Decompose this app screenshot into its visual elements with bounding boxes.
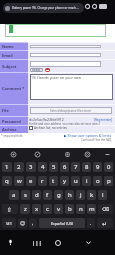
button[interactable]: ↵ — [97, 218, 113, 228]
button[interactable]: b — [65, 204, 74, 214]
button[interactable]: Confused? See the FAQ. — [81, 138, 112, 142]
staticText: !#1 — [6, 221, 12, 226]
staticText: d — [35, 191, 39, 199]
staticText: Select/drop/paste files here — [50, 109, 92, 113]
button[interactable]: !#1 — [2, 218, 16, 228]
staticText: i — [86, 177, 88, 185]
staticText: Subject — [2, 64, 17, 69]
staticText: Email — [2, 53, 13, 58]
button[interactable]: Emoji — [31, 148, 43, 160]
staticText: m — [89, 205, 95, 213]
button[interactable] — [30, 61, 101, 67]
button[interactable]: m — [87, 204, 96, 214]
staticText: t — [52, 177, 55, 185]
button[interactable]: ☺ — [18, 218, 27, 228]
button[interactable]: 4 — [38, 162, 47, 172]
button[interactable]: i — [82, 176, 91, 186]
staticText: * required field — [1, 134, 23, 138]
button[interactable]: Settings — [81, 148, 93, 160]
button[interactable]: More options — [101, 148, 113, 160]
staticText: ⇧ — [7, 206, 13, 213]
staticText: o — [96, 177, 100, 185]
button[interactable]: 2 — [14, 162, 24, 172]
button[interactable]: , — [29, 218, 37, 228]
button[interactable]: ⇧ — [2, 204, 18, 214]
button[interactable]: Back — [81, 230, 95, 255]
button[interactable]: n — [76, 204, 85, 214]
button[interactable]: a — [9, 190, 19, 200]
button[interactable]: 7 — [71, 162, 80, 172]
button[interactable]: u — [71, 176, 80, 186]
button[interactable]: y — [60, 176, 69, 186]
button[interactable] — [30, 45, 101, 48]
staticText: , — [32, 220, 34, 227]
button[interactable]: ▶ Show user options & limits — [64, 133, 112, 138]
button[interactable]: Select/drop/paste files here — [30, 107, 112, 114]
button[interactable]: k — [87, 190, 96, 200]
button[interactable]: s — [21, 190, 30, 200]
staticText: y — [63, 177, 67, 185]
button[interactable]: [Regenerate] — [94, 118, 113, 122]
button[interactable]: x — [32, 204, 41, 214]
button[interactable]: 9 — [93, 162, 102, 172]
staticText: e — [29, 177, 33, 185]
button[interactable]: o — [93, 176, 102, 186]
button[interactable]: Home — [51, 230, 65, 255]
staticText: 4 — [41, 163, 45, 171]
staticText: g — [57, 191, 61, 199]
button[interactable]: l — [98, 190, 107, 200]
button[interactable]: g — [54, 190, 63, 200]
button[interactable]: t — [49, 176, 58, 186]
button[interactable]: ⌫ — [98, 204, 113, 214]
button[interactable]: 0 — [104, 162, 113, 172]
staticText: Comment * — [2, 86, 25, 91]
staticText: z — [24, 205, 27, 213]
button[interactable]: h — [65, 190, 74, 200]
button[interactable]: f — [43, 190, 52, 200]
staticText: x — [35, 205, 39, 213]
staticText: q — [5, 177, 9, 185]
button[interactable]: v — [54, 204, 63, 214]
staticText: 1% Ozards yoser on your own — [31, 75, 82, 80]
button[interactable]: c — [43, 204, 52, 214]
button[interactable]: Delete — [45, 68, 50, 72]
button[interactable]: Google search — [7, 148, 19, 160]
button[interactable]: Archive checkbox — [29, 126, 33, 130]
button[interactable]: 5 — [49, 162, 58, 172]
button[interactable]: z — [20, 204, 30, 214]
staticText: a — [12, 191, 16, 199]
staticText: 1 — [5, 163, 9, 171]
staticText: v — [57, 205, 61, 213]
staticText: Battery power 9%. Charge your phone or r… — [12, 6, 79, 10]
button[interactable]: e — [26, 176, 36, 186]
staticText: j — [80, 191, 82, 199]
staticText: for file and your address, you may also … — [29, 122, 100, 125]
button[interactable]: q — [2, 176, 12, 186]
staticText: b — [68, 205, 72, 213]
button[interactable]: Microphone — [3, 230, 17, 255]
button[interactable]: Español (US) — [39, 218, 85, 228]
button[interactable]: 8 — [82, 162, 91, 172]
staticText: k — [90, 191, 94, 199]
button[interactable] — [30, 53, 101, 57]
staticText: l — [102, 191, 104, 199]
button[interactable]: j — [76, 190, 85, 200]
button[interactable]: 1% Ozards yoser on your own — [30, 74, 113, 100]
button[interactable]: Battery power 9%. Charge your phone or r… — [5, 3, 82, 13]
button[interactable]: 6 — [60, 162, 69, 172]
staticText: Name — [2, 44, 14, 49]
button[interactable]: . — [87, 218, 95, 228]
staticText: ↵ — [102, 220, 108, 227]
button[interactable]: p — [104, 176, 113, 186]
staticText: c — [46, 205, 49, 213]
button[interactable]: Reply — [32, 68, 41, 72]
button[interactable]: r — [38, 176, 47, 186]
button[interactable]: d — [32, 190, 41, 200]
staticText: 0 — [107, 163, 111, 171]
button[interactable]: Recents — [30, 230, 44, 255]
button[interactable]: 3 — [26, 162, 36, 172]
button[interactable]: w — [14, 176, 24, 186]
button[interactable]: 1 — [2, 162, 12, 172]
staticText: ☺ — [20, 220, 26, 226]
button[interactable]: Clipboard — [61, 148, 73, 160]
